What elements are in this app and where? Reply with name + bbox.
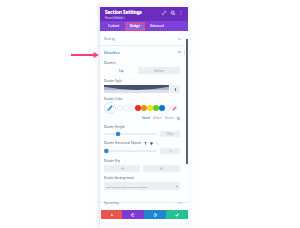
button[interactable]: Divider style xyxy=(104,85,169,93)
button[interactable]: More options xyxy=(178,10,184,16)
staticText: Sizing xyxy=(104,36,116,41)
button[interactable]: 1x xyxy=(160,148,180,154)
button[interactable]: Slider xyxy=(104,147,158,154)
staticText: Divider Height xyxy=(104,125,125,129)
staticText: Advanced xyxy=(150,24,164,28)
staticText: Divider Style xyxy=(104,79,122,83)
staticText: Design xyxy=(130,24,140,28)
button[interactable]: 100px xyxy=(160,131,180,137)
button[interactable]: Redo xyxy=(144,210,166,219)
button[interactable]: Transparent xyxy=(171,105,177,111)
button[interactable]: Color swatch xyxy=(153,105,159,111)
button[interactable]: Empty color swatch xyxy=(129,105,135,111)
button[interactable]: Hover state xyxy=(149,141,153,145)
button[interactable]: Content xyxy=(103,21,124,31)
button[interactable]: Color swatch xyxy=(135,105,141,111)
staticText: Divider(s) On Top Of Section Content xyxy=(106,185,147,188)
staticText: Content xyxy=(108,24,120,28)
button[interactable]: Color swatch xyxy=(141,105,147,111)
staticText: Global xyxy=(153,116,162,120)
button[interactable]: Undo xyxy=(122,210,144,219)
staticText: Preset: Default ▾ xyxy=(105,16,125,20)
button[interactable]: Slider xyxy=(104,130,158,137)
button[interactable]: Divider style settings xyxy=(170,85,180,93)
staticText: Bottom xyxy=(154,69,164,73)
button[interactable]: Sizing xyxy=(100,32,188,45)
button[interactable]: Flip horizontally xyxy=(104,165,140,172)
button[interactable]: Recent xyxy=(165,116,174,120)
staticText: Recent xyxy=(165,116,174,120)
button[interactable]: Spacing xyxy=(100,196,188,209)
staticText: Divider Color xyxy=(104,97,123,101)
button[interactable]: Eyedropper xyxy=(104,102,116,114)
button[interactable]: Color swatch xyxy=(147,105,153,111)
button[interactable]: Color swatch xyxy=(159,105,165,111)
staticText: Saved xyxy=(142,116,150,120)
staticText: Spacing xyxy=(104,200,119,205)
button[interactable]: Design xyxy=(124,21,146,31)
staticText: Divider Horizontal Repeat xyxy=(104,141,141,145)
staticText: Divider Arrangement xyxy=(104,176,135,180)
button[interactable]: Save xyxy=(166,210,188,219)
button[interactable]: Global xyxy=(153,116,162,120)
button[interactable]: Pointer xyxy=(101,210,122,219)
button[interactable]: Dividers xyxy=(100,46,188,58)
button[interactable]: Divider(s) On Top Of Section Content xyxy=(104,182,180,190)
staticText: 1x xyxy=(169,149,172,153)
button[interactable]: Field options xyxy=(155,141,159,145)
button[interactable]: Empty color swatch xyxy=(165,105,171,111)
button[interactable]: Empty color swatch xyxy=(123,105,129,111)
button[interactable]: Advanced xyxy=(146,21,168,31)
button[interactable]: Flip vertically xyxy=(143,165,180,172)
button[interactable]: Search xyxy=(169,9,176,16)
staticText: Divider Flip xyxy=(104,159,121,163)
button[interactable]: Responsive xyxy=(143,141,147,145)
staticText: 100px xyxy=(166,132,174,136)
button[interactable]: Top xyxy=(104,67,138,74)
staticText: Section Settings xyxy=(105,9,142,15)
button[interactable]: Color settings xyxy=(177,117,180,120)
staticText: Dividers xyxy=(104,61,116,65)
button[interactable]: Empty color swatch xyxy=(117,105,123,111)
button[interactable]: Expand xyxy=(160,9,167,16)
staticText: Top xyxy=(119,69,124,73)
staticText: Dividers xyxy=(104,50,120,55)
button[interactable]: Bottom xyxy=(138,67,180,74)
button[interactable]: Saved xyxy=(142,116,150,120)
